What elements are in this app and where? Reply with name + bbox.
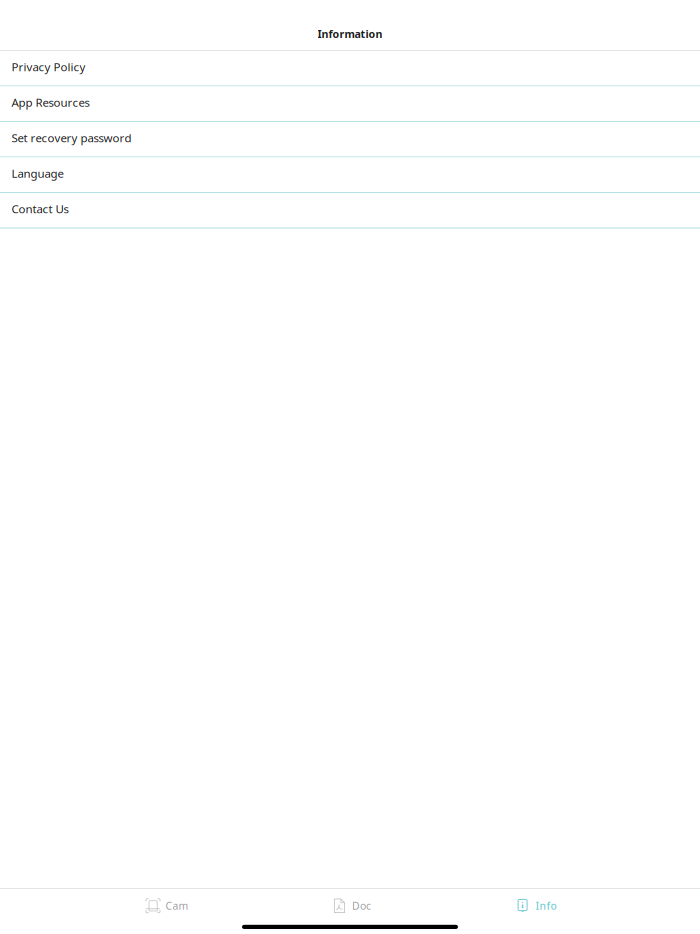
staticText: Set recovery password [11,130,131,145]
button[interactable]: Set recovery password [0,122,700,157]
button[interactable]: Contact Us [0,193,700,228]
button[interactable]: Language [0,157,700,193]
staticText: Info [535,899,556,913]
staticText: Contact Us [11,201,68,216]
staticText: Cam [165,899,188,913]
button[interactable]: Doc [259,889,444,923]
staticText: Information [317,26,382,41]
button[interactable]: Privacy Policy [0,51,700,86]
staticText: Language [11,165,63,181]
button[interactable]: App Resources [0,86,700,122]
button[interactable]: Cam [75,889,259,923]
button[interactable]: Info [444,889,628,923]
staticText: Privacy Policy [11,59,85,74]
staticText: App Resources [11,94,89,110]
staticText: Doc [352,899,371,913]
